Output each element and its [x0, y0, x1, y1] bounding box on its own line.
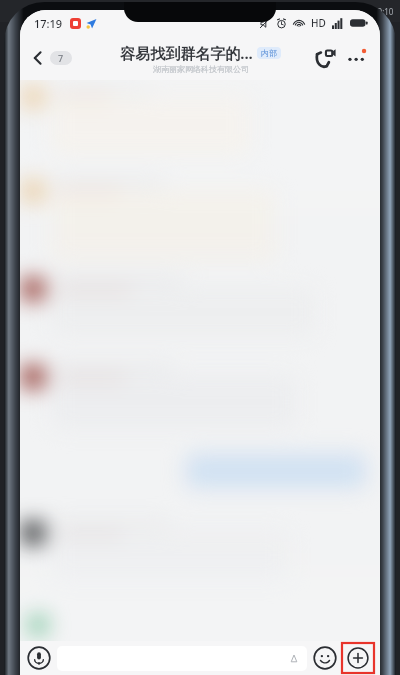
staticText: 容易找到群名字的...: [120, 43, 253, 63]
staticText: 7: [58, 52, 64, 64]
button[interactable]: More functions: [342, 643, 374, 673]
button[interactable]: Video call: [310, 43, 340, 73]
button[interactable]: [57, 646, 307, 671]
staticText: K/s: [60, 6, 71, 16]
staticText: 17:19: [34, 16, 63, 31]
button[interactable]: Emoji: [312, 645, 338, 671]
staticText: 20:10: [373, 6, 394, 17]
button[interactable]: Back, 7 unread: [24, 46, 78, 70]
staticText: 内部: [261, 48, 277, 58]
staticText: HD: [311, 16, 326, 30]
staticText: 湖南丽家网络科技有限公司: [153, 64, 249, 74]
button[interactable]: More options: [342, 43, 372, 73]
button[interactable]: Voice message: [26, 645, 52, 671]
